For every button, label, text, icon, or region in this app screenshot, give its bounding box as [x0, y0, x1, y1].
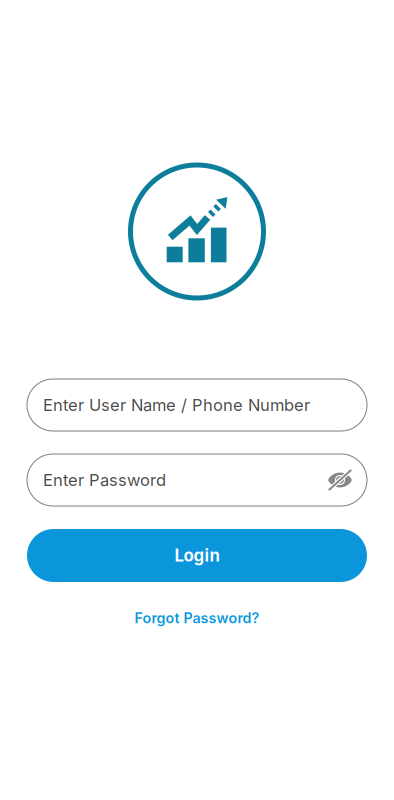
- staticText: Login: [174, 545, 219, 566]
- button[interactable]: Login: [0, 529, 394, 582]
- staticText: Enter Password: [43, 470, 166, 490]
- button[interactable]: Forgot Password?: [120, 604, 273, 632]
- staticText: Enter User Name / Phone Number: [43, 395, 310, 415]
- button[interactable]: Show password: [313, 454, 353, 505]
- staticText: Forgot Password?: [134, 609, 259, 627]
